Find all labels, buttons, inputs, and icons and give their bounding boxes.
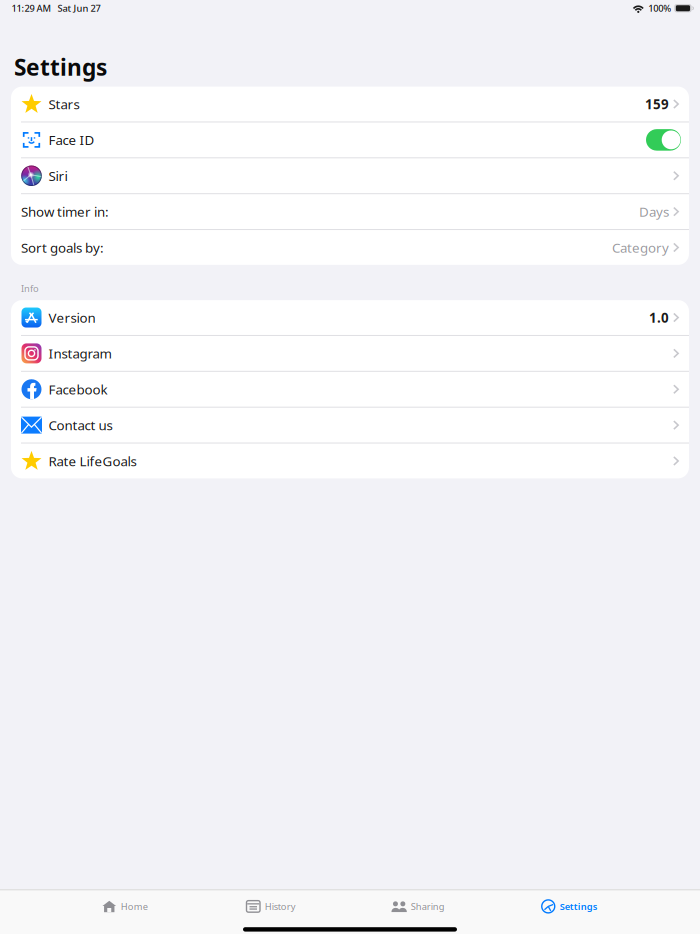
staticText: Stars	[48, 95, 79, 113]
staticText: Siri	[48, 167, 67, 185]
button[interactable]: Version	[11, 300, 689, 335]
staticText: Sat Jun 27	[57, 2, 100, 14]
staticText: Version	[48, 309, 95, 326]
staticText: Sharing	[411, 900, 445, 913]
button[interactable]: Facebook	[11, 372, 689, 407]
staticText: Days	[639, 203, 669, 220]
button[interactable]: History	[244, 890, 298, 922]
staticText: 11:29 AM	[11, 2, 51, 14]
staticText: Sort goals by:	[21, 239, 104, 256]
button[interactable]: Siri	[11, 158, 689, 193]
staticText: Settings	[560, 900, 598, 913]
staticText: Show timer in:	[21, 203, 109, 220]
staticText: Category	[612, 239, 669, 256]
button[interactable]: Settings	[539, 890, 600, 922]
staticText: 100%	[648, 2, 671, 14]
staticText: History	[265, 900, 296, 913]
staticText: Rate LifeGoals	[48, 452, 136, 470]
button[interactable]: Show timer in:	[11, 194, 689, 229]
staticText: 1.0	[649, 309, 669, 326]
staticText: Face ID	[48, 131, 94, 149]
button[interactable]: Stars	[11, 87, 689, 121]
button[interactable]: Sort goals by:	[11, 230, 689, 265]
button[interactable]: Home	[100, 890, 150, 922]
staticText: Contact us	[48, 416, 112, 434]
button[interactable]: Face ID	[646, 129, 681, 151]
staticText: Info	[21, 282, 39, 295]
button[interactable]: Contact us	[11, 408, 689, 443]
staticText: Facebook	[48, 380, 107, 398]
button[interactable]: Rate LifeGoals	[11, 443, 689, 478]
staticText: Settings	[14, 52, 107, 82]
button[interactable]: Instagram	[11, 336, 689, 371]
staticText: 159	[645, 95, 669, 113]
staticText: Instagram	[48, 344, 111, 362]
button[interactable]: Sharing	[390, 890, 447, 922]
staticText: Home	[121, 900, 148, 913]
